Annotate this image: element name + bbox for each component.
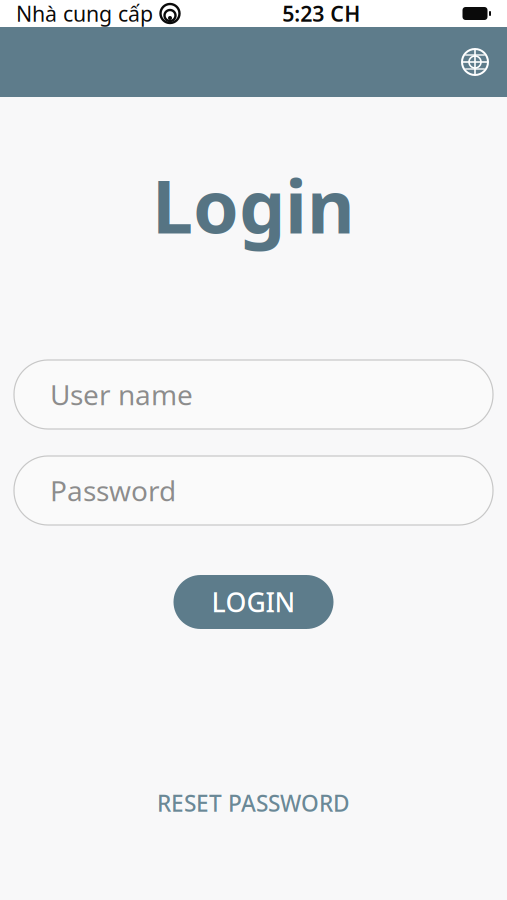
staticText: RESET PASSWORD [157, 788, 350, 818]
button[interactable]: LOGIN [173, 575, 333, 629]
staticText: User name [50, 376, 193, 413]
staticText: 5:23 CH [282, 0, 360, 28]
staticText: Password [50, 472, 176, 509]
staticText: Nhà cung cấp [16, 0, 153, 28]
button[interactable]: Language [453, 40, 497, 84]
staticText: Login [152, 156, 355, 254]
button[interactable]: RESET PASSWORD [141, 778, 366, 828]
staticText: LOGIN [211, 584, 295, 620]
